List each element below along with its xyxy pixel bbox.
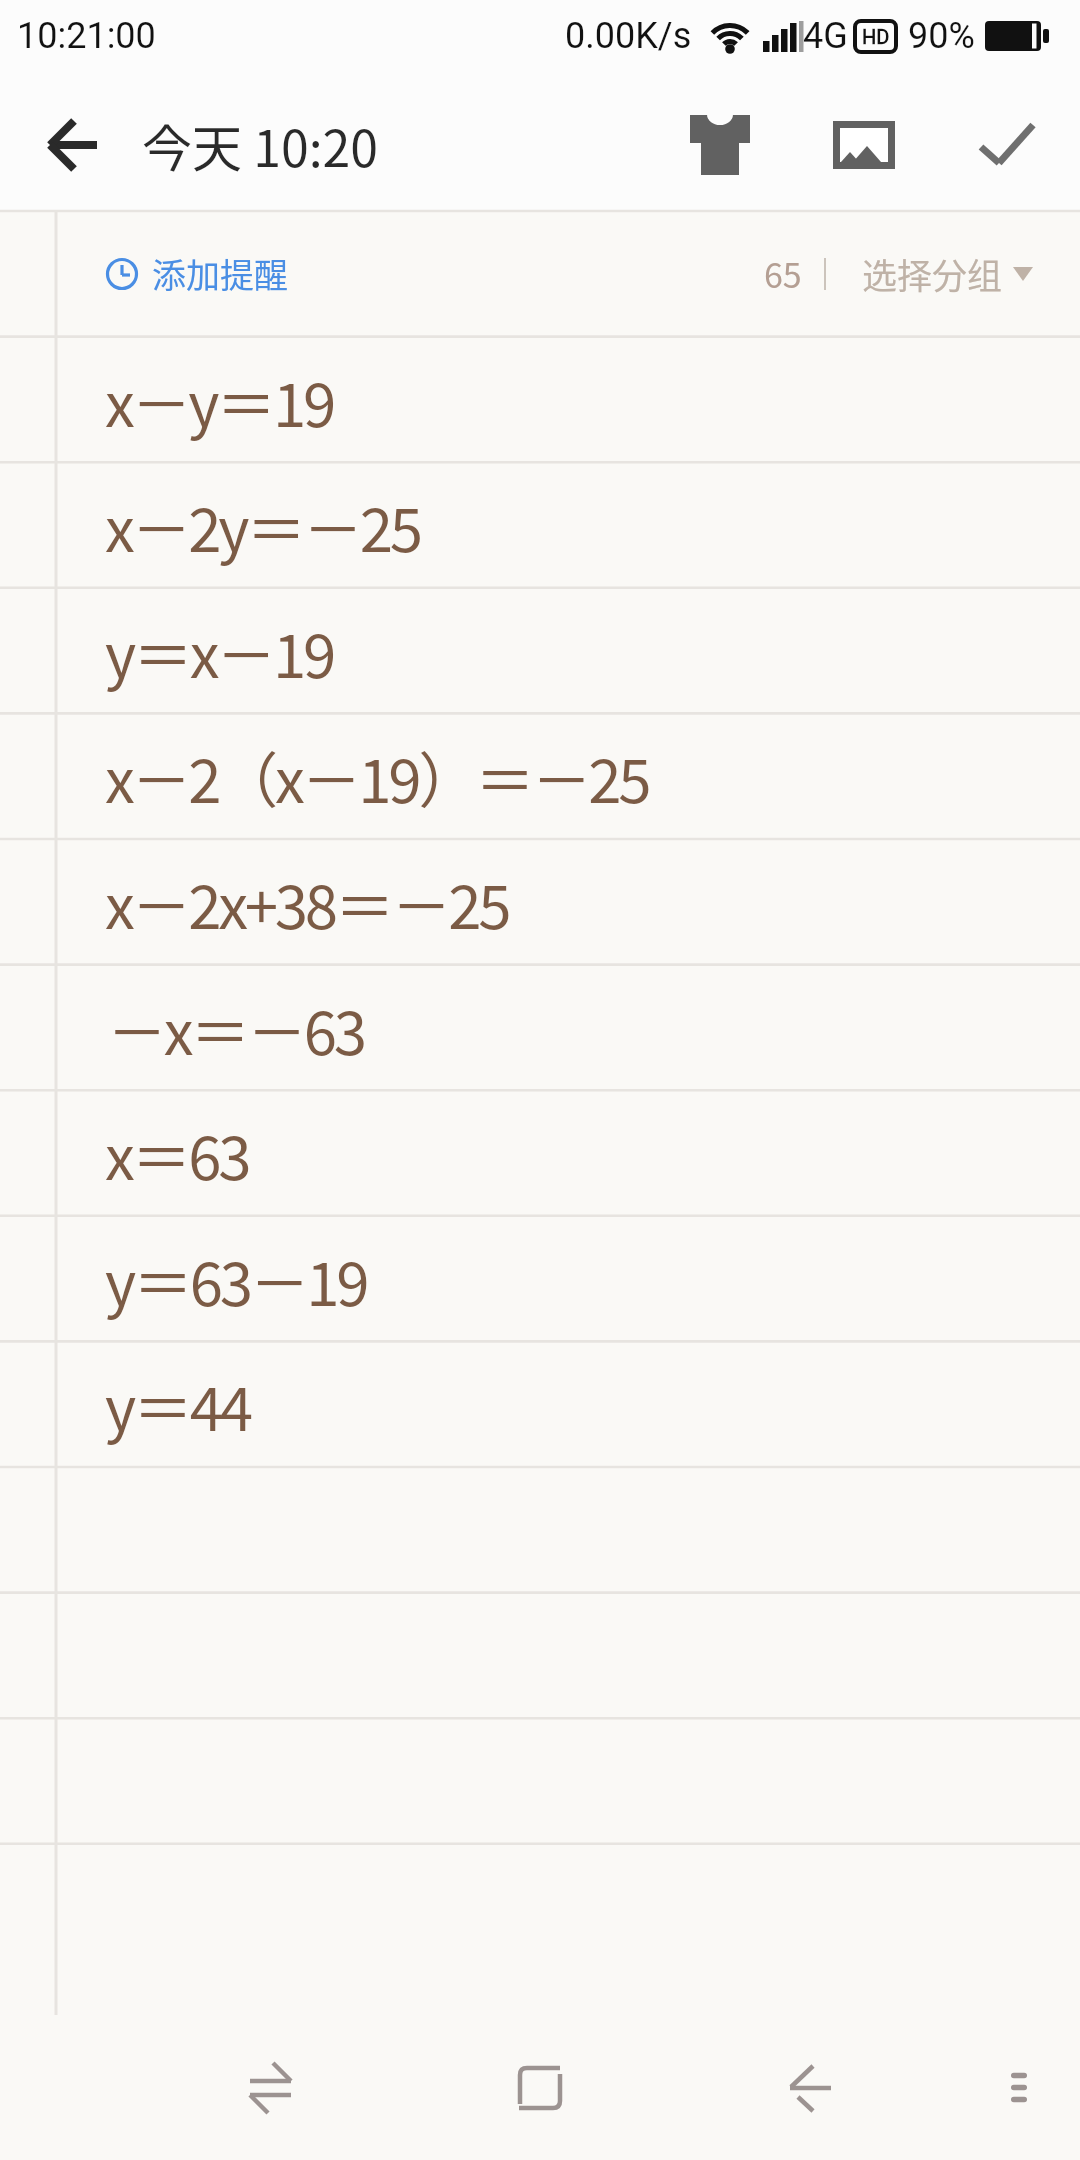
staticText: x－2x+38＝－25 <box>105 859 509 946</box>
staticText: x＝63 <box>105 1110 249 1197</box>
staticText: 10:21:00 <box>17 15 156 57</box>
staticText: y＝63－19 <box>105 1236 367 1323</box>
staticText: 选择分组 <box>862 248 1003 299</box>
staticText: 添加提醒 <box>152 249 288 298</box>
button[interactable] <box>500 2048 580 2128</box>
button[interactable]: 添加提醒 <box>106 211 288 336</box>
staticText: HD <box>862 25 890 48</box>
staticText: 90% <box>908 15 975 57</box>
button[interactable] <box>820 100 908 190</box>
button[interactable] <box>979 2048 1059 2128</box>
button[interactable]: 选择分组 <box>862 248 1033 299</box>
button[interactable] <box>30 80 120 210</box>
staticText: x－y＝19 <box>105 357 333 444</box>
staticText: －x＝－63 <box>107 985 364 1072</box>
staticText: 65 <box>764 249 802 298</box>
button[interactable] <box>770 2048 850 2128</box>
staticText: x－2（x－19）＝－25 <box>105 733 649 820</box>
staticText: x－2y＝－25 <box>105 482 420 569</box>
button[interactable] <box>676 100 764 190</box>
staticText: 4G <box>803 15 848 57</box>
staticText: 0.00K/s <box>565 15 692 57</box>
button[interactable] <box>230 2048 310 2128</box>
button[interactable] <box>962 100 1052 190</box>
staticText: y＝x－19 <box>105 608 333 695</box>
staticText: y＝44 <box>105 1361 250 1448</box>
staticText: 今天 10:20 <box>142 109 379 181</box>
